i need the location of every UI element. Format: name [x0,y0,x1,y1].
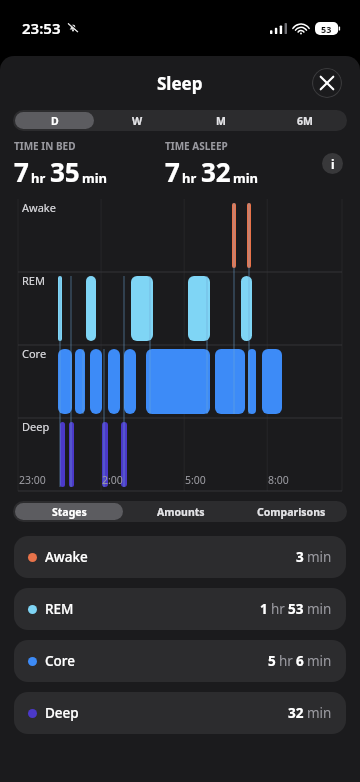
staticText: Deep [45,704,79,722]
staticText: Sleep [157,72,203,95]
staticText: Deep [22,419,50,434]
staticText: 53 [288,600,304,618]
button[interactable]: REM [14,588,346,630]
staticText: i [331,156,335,172]
button[interactable]: 6M [265,112,345,129]
staticText: W [132,114,143,128]
staticText: min [307,600,332,618]
staticText: Comparisons [257,505,326,519]
staticText: 23:53 [22,18,61,38]
staticText: hr [31,169,46,187]
button[interactable]: M [181,112,261,129]
staticText: 5 [268,652,276,670]
staticText: 1 [260,600,268,618]
button[interactable]: W [98,112,177,129]
staticText: 6M [297,114,313,128]
button[interactable]: Awake [14,536,346,578]
button[interactable]: Amounts [127,503,234,520]
staticText: Amounts [157,505,205,519]
staticText: 32 [201,154,231,189]
staticText: 2:00 [102,473,135,487]
staticText: 6 [296,652,304,670]
button[interactable]: Core [14,640,346,682]
staticText: 53 [321,23,332,35]
staticText: min [307,704,332,722]
staticText: 23:00 [19,473,52,487]
staticText: REM [45,600,74,618]
staticText: 7 [165,154,180,189]
button[interactable]: Close [312,68,342,98]
staticText: M [216,114,226,128]
staticText: REM [22,273,45,288]
staticText: min [307,652,332,670]
staticText: hr [279,652,293,670]
staticText: Awake [22,200,56,215]
staticText: 35 [50,154,80,189]
button[interactable]: Deep [14,692,346,734]
button[interactable]: D [15,112,94,129]
staticText: Core [22,346,47,361]
staticText: min [307,548,332,566]
staticText: Stages [52,505,87,519]
button[interactable]: Comparisons [238,503,345,520]
staticText: hr [271,600,285,618]
staticText: TIME IN BED [14,139,76,153]
staticText: 7 [14,154,29,189]
staticText: 3 [296,548,304,566]
staticText: hr [182,169,197,187]
staticText: Awake [45,548,88,566]
button[interactable]: Info [322,153,343,174]
staticText: Core [45,652,76,670]
staticText: 8:00 [268,473,301,487]
staticText: min [82,169,108,187]
button[interactable]: Stages [15,503,123,520]
staticText: 5:00 [185,473,218,487]
staticText: TIME ASLEEP [165,139,228,153]
staticText: D [51,114,59,128]
staticText: 32 [288,704,304,722]
staticText: min [233,169,259,187]
